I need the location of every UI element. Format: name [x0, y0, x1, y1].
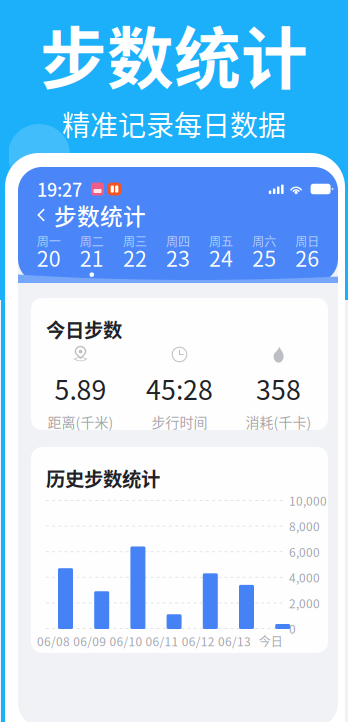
staticText: 距离(千米): [47, 412, 113, 432]
staticText: 周二: [80, 232, 104, 250]
staticText: 26: [295, 242, 319, 273]
staticText: 21: [80, 242, 104, 273]
staticText: 消耗(千卡): [245, 412, 311, 432]
staticText: 23: [166, 242, 190, 273]
staticText: 历史步数统计: [46, 464, 160, 492]
staticText: 20: [37, 242, 61, 273]
staticText: 06/10: [109, 632, 142, 650]
staticText: 周三: [123, 232, 147, 250]
staticText: 10,000: [289, 492, 327, 509]
button[interactable]: 周六: [243, 235, 286, 277]
staticText: 06/09: [73, 632, 106, 650]
staticText: 25: [252, 242, 276, 273]
staticText: 步数统计: [40, 6, 308, 102]
staticText: 06/13: [218, 632, 251, 650]
button[interactable]: 周一: [27, 235, 70, 277]
button[interactable]: 周四: [156, 235, 199, 277]
staticText: 精准记录每日数据: [62, 103, 286, 144]
button[interactable]: 周三: [113, 235, 156, 277]
staticText: 0: [289, 620, 296, 637]
staticText: 今日: [259, 632, 283, 650]
staticText: 6,000: [289, 543, 320, 560]
staticText: 22: [123, 242, 147, 273]
staticText: 周五: [209, 232, 233, 250]
staticText: 2,000: [289, 594, 320, 612]
staticText: 步数统计: [54, 199, 146, 231]
staticText: 8,000: [289, 517, 320, 535]
button[interactable]: 周五: [199, 235, 243, 277]
staticText: 24: [209, 242, 233, 273]
staticText: 358: [256, 369, 301, 408]
staticText: 06/11: [146, 632, 179, 650]
staticText: 45:28: [146, 369, 213, 408]
staticText: 4,000: [289, 569, 320, 586]
staticText: 周一: [37, 232, 61, 250]
staticText: 步行时间: [151, 412, 207, 432]
staticText: 周日: [295, 232, 319, 250]
button[interactable]: 步数统计: [18, 203, 338, 227]
button[interactable]: 周日: [286, 235, 329, 277]
staticText: 5.89: [54, 369, 106, 408]
staticText: 今日步数: [46, 315, 122, 343]
staticText: 06/12: [182, 632, 215, 650]
staticText: 周六: [252, 232, 276, 250]
staticText: 19:27: [37, 176, 82, 202]
staticText: 06/08: [37, 632, 70, 650]
staticText: 周四: [166, 232, 190, 250]
button[interactable]: 周二: [70, 235, 113, 277]
